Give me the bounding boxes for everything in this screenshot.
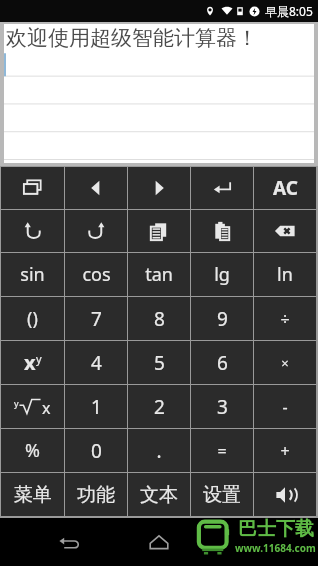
button[interactable]: Windows xyxy=(1,167,64,209)
button[interactable]: Home xyxy=(137,520,181,564)
staticText: 1 xyxy=(91,394,102,420)
button[interactable]: tan xyxy=(128,253,190,296)
button[interactable]: Right xyxy=(128,167,190,209)
staticText: 功能 xyxy=(77,483,115,507)
button[interactable]: ln xyxy=(254,253,316,296)
button[interactable]: 设置 xyxy=(191,473,253,516)
staticText: 巴士下载 xyxy=(238,517,314,541)
button[interactable]: lg xyxy=(191,253,253,296)
staticText: × xyxy=(281,354,289,372)
button[interactable]: . xyxy=(128,429,190,472)
button[interactable]: = xyxy=(191,429,253,472)
staticText: 0 xyxy=(91,438,102,464)
button[interactable]: 文本 xyxy=(128,473,190,516)
staticText: () xyxy=(27,306,38,331)
button[interactable]: 5 xyxy=(128,341,190,384)
button[interactable]: 4 xyxy=(65,341,127,384)
staticText: x xyxy=(24,349,36,376)
button[interactable]: × xyxy=(254,341,316,384)
button[interactable]: % xyxy=(1,429,64,472)
staticText: lg xyxy=(214,262,230,287)
staticText: 早晨8:05 xyxy=(265,3,313,19)
button[interactable]: 8 xyxy=(128,297,190,340)
staticText: 4 xyxy=(91,350,102,376)
staticText: tan xyxy=(145,262,173,287)
staticText: 3 xyxy=(217,394,228,420)
button[interactable]: ÷ xyxy=(254,297,316,340)
button[interactable]: Copy xyxy=(128,210,190,252)
button[interactable]: 1 xyxy=(65,385,127,428)
staticText: y xyxy=(36,351,42,366)
button[interactable]: 7 xyxy=(65,297,127,340)
button[interactable]: - xyxy=(254,385,316,428)
button[interactable]: y xyxy=(1,385,64,428)
staticText: ÷ xyxy=(280,308,290,330)
button[interactable]: Back xyxy=(47,520,91,564)
staticText: 9 xyxy=(217,306,228,332)
staticText: 欢迎使用超级智能计算器！ xyxy=(6,25,258,51)
staticText: % xyxy=(25,438,40,463)
button[interactable]: 菜单 xyxy=(1,473,64,516)
button[interactable]: cos xyxy=(65,253,127,296)
button[interactable]: x xyxy=(1,341,64,384)
button[interactable]: () xyxy=(1,297,64,340)
button[interactable]: + xyxy=(254,429,316,472)
button[interactable]: AC xyxy=(254,167,316,209)
staticText: x xyxy=(42,397,51,419)
button[interactable]: Backspace xyxy=(254,210,316,252)
staticText: 8 xyxy=(154,306,165,332)
staticText: 7 xyxy=(91,306,102,332)
button[interactable]: 2 xyxy=(128,385,190,428)
staticText: y xyxy=(14,397,19,409)
staticText: 5 xyxy=(154,350,165,376)
staticText: = xyxy=(217,440,227,462)
button[interactable]: Sound xyxy=(254,473,316,516)
button[interactable]: Recents xyxy=(228,520,272,564)
button[interactable]: 6 xyxy=(191,341,253,384)
button[interactable]: 3 xyxy=(191,385,253,428)
staticText: + xyxy=(280,440,290,462)
button[interactable]: sin xyxy=(1,253,64,296)
staticText: 设置 xyxy=(203,483,241,507)
staticText: sin xyxy=(20,262,45,287)
staticText: 2 xyxy=(154,394,165,420)
staticText: AC xyxy=(273,175,298,201)
button[interactable]: Paste xyxy=(191,210,253,252)
button[interactable]: 9 xyxy=(191,297,253,340)
staticText: ln xyxy=(277,262,293,287)
staticText: cos xyxy=(82,262,111,287)
staticText: 菜单 xyxy=(14,483,52,507)
button[interactable]: Undo xyxy=(1,210,64,252)
button[interactable]: 0 xyxy=(65,429,127,472)
staticText: . xyxy=(156,438,162,464)
button[interactable]: Redo xyxy=(65,210,127,252)
button[interactable]: Left xyxy=(65,167,127,209)
button[interactable]: 功能 xyxy=(65,473,127,516)
staticText: 6 xyxy=(217,350,228,376)
staticText: - xyxy=(282,396,288,418)
button[interactable]: Enter xyxy=(191,167,253,209)
staticText: www.11684.com xyxy=(235,541,316,555)
staticText: 文本 xyxy=(140,483,178,507)
